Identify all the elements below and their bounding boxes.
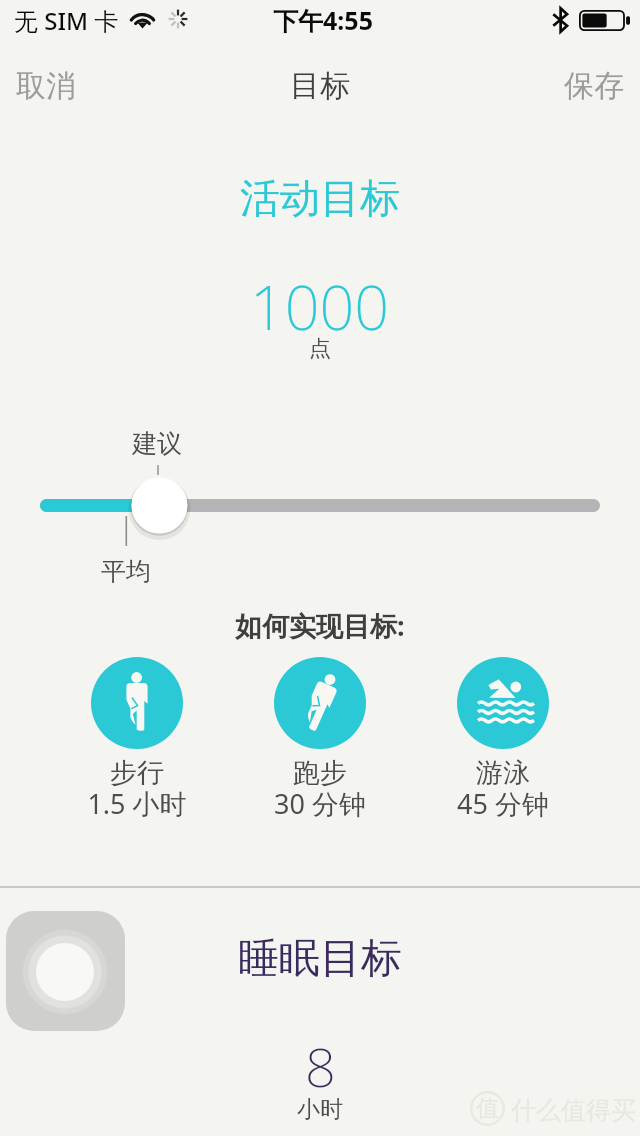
staticText: 值	[476, 1094, 499, 1123]
staticText: 取消	[16, 67, 76, 105]
staticText: 保存	[564, 67, 624, 105]
staticText: 点	[309, 335, 331, 363]
staticText: 如何实现目标:	[235, 607, 405, 644]
button[interactable]: 游泳	[413, 657, 593, 827]
staticText: 1.5 小时	[87, 785, 187, 822]
staticText: 45 分钟	[457, 785, 549, 822]
staticText: 睡眠目标	[238, 933, 402, 985]
button[interactable]: 跑步	[230, 657, 410, 827]
staticText: 8	[305, 1029, 336, 1103]
staticText: 跑步	[293, 756, 347, 790]
button[interactable]: Activity goal slider	[0, 436, 640, 576]
staticText: 步行	[110, 756, 164, 790]
staticText: 下午4:55	[273, 3, 373, 37]
staticText: 游泳	[476, 756, 530, 790]
button[interactable]: 保存	[548, 54, 640, 118]
button[interactable]: Sleep goal image	[6, 911, 125, 1031]
button[interactable]: 步行	[47, 657, 227, 827]
staticText: 什么值得买	[511, 1095, 636, 1126]
staticText: 小时	[297, 1095, 343, 1124]
staticText: 1000	[250, 265, 390, 348]
staticText: 活动目标	[240, 173, 400, 223]
staticText: 平均	[101, 556, 151, 587]
staticText: 目标	[290, 67, 350, 105]
staticText: 建议	[132, 428, 182, 459]
staticText: 无 SIM 卡	[14, 4, 119, 37]
staticText: 30 分钟	[274, 785, 366, 822]
button[interactable]: 取消	[0, 54, 91, 118]
